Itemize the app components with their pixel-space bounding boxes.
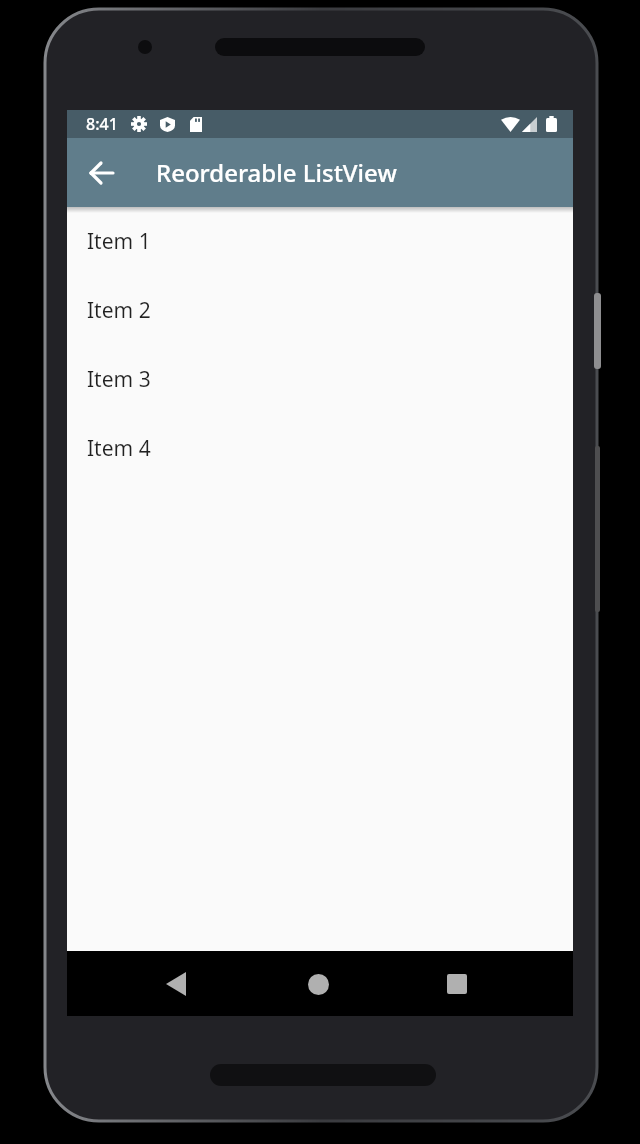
staticText: Item 3 <box>87 365 151 394</box>
button[interactable]: Item 3 <box>67 345 573 414</box>
button[interactable] <box>164 972 188 996</box>
staticText: Reorderable ListView <box>156 156 397 189</box>
staticText: Item 1 <box>87 227 151 256</box>
staticText: Item 2 <box>87 296 151 325</box>
staticText: 8:41 <box>86 113 118 135</box>
button[interactable] <box>445 972 469 996</box>
button[interactable]: Item 2 <box>67 276 573 345</box>
button[interactable]: Item 1 <box>67 207 573 276</box>
button[interactable] <box>67 138 136 207</box>
button[interactable]: Item 4 <box>67 414 573 483</box>
button[interactable] <box>306 972 330 996</box>
staticText: Item 4 <box>87 434 151 463</box>
